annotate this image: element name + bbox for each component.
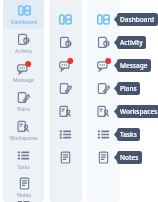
staticText: Tasks <box>120 130 137 139</box>
button[interactable]: Plans <box>87 77 120 100</box>
button[interactable]: Message <box>114 59 151 72</box>
button[interactable]: Activity <box>3 29 44 58</box>
button[interactable]: Message <box>87 54 120 77</box>
button[interactable]: Plans <box>3 87 44 116</box>
button[interactable]: Tasks <box>3 145 44 174</box>
button[interactable]: Notes <box>87 146 120 169</box>
staticText: Notes <box>120 153 139 162</box>
button[interactable]: Workspaces <box>49 100 82 123</box>
button[interactable]: Workspaces <box>87 100 120 123</box>
button[interactable]: Plans <box>49 77 82 100</box>
button[interactable]: Notes <box>49 146 82 169</box>
button[interactable]: Tasks <box>114 128 140 141</box>
button[interactable]: Activity <box>87 31 120 54</box>
button[interactable]: Message <box>3 58 44 87</box>
button[interactable]: Message <box>49 54 82 77</box>
button[interactable]: Notes <box>114 151 142 164</box>
staticText: Notes <box>17 192 31 199</box>
staticText: Plans <box>120 84 137 93</box>
button[interactable]: Dashboard <box>87 8 120 31</box>
staticText: Message <box>120 61 148 70</box>
staticText: Activity <box>120 38 143 47</box>
staticText: Workspaces <box>9 135 38 142</box>
button[interactable]: Dashboard <box>114 13 158 26</box>
button[interactable]: Tasks <box>87 123 120 146</box>
button[interactable]: Workspaces <box>114 105 158 118</box>
staticText: Activity <box>15 48 32 55</box>
staticText: Message <box>13 77 34 84</box>
button[interactable]: Tasks <box>49 123 82 146</box>
button[interactable]: Plans <box>114 82 140 95</box>
staticText: Dashboard <box>120 15 155 24</box>
button[interactable]: Dashboard <box>3 0 44 29</box>
button[interactable]: Dashboard <box>49 8 82 31</box>
staticText: Plans <box>17 106 30 113</box>
staticText: Tasks <box>17 164 30 171</box>
button[interactable]: Workspaces <box>3 116 44 145</box>
button[interactable]: Activity <box>114 36 146 49</box>
button[interactable]: Activity <box>49 31 82 54</box>
staticText: Dashboard <box>11 19 37 26</box>
button[interactable]: Notes <box>3 174 44 202</box>
staticText: Workspaces <box>120 107 158 116</box>
